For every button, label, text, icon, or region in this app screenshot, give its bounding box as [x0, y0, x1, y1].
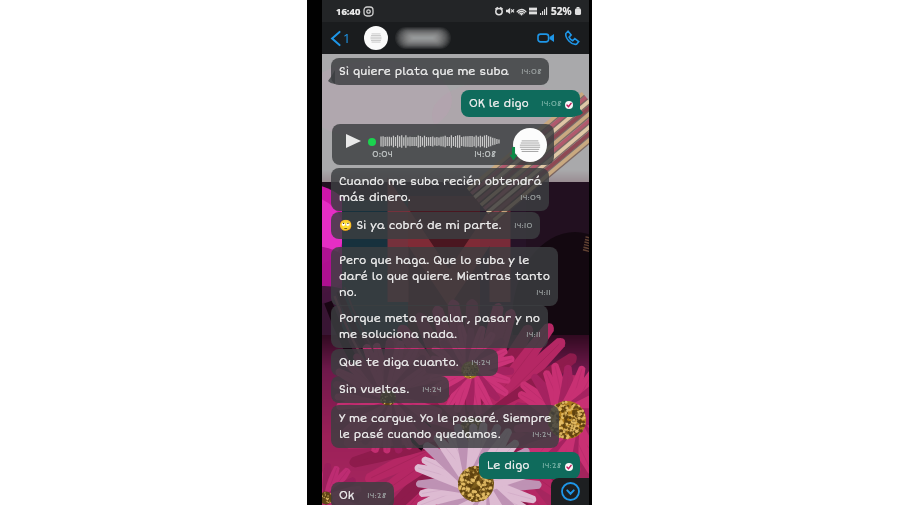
- staticText: 14:11: [526, 330, 541, 340]
- staticText: OK le digo: [469, 97, 529, 110]
- button[interactable]: [393, 25, 453, 51]
- staticText: Si quiere plata que me suba: [339, 65, 509, 78]
- staticText: 14:08: [521, 67, 542, 77]
- button[interactable]: Le digo: [479, 452, 580, 479]
- button[interactable]: Y me cargue. Yo le pasaré. Siempre: [331, 405, 559, 448]
- staticText: Le digo: [487, 459, 530, 472]
- staticText: 14:11: [536, 288, 551, 298]
- staticText: Cuando me suba recién obtendrá: [339, 175, 542, 188]
- staticText: 14:10: [514, 221, 533, 231]
- staticText: 14:08: [541, 99, 562, 109]
- button[interactable]: Ok: [331, 482, 394, 505]
- button[interactable]: OK le digo: [461, 90, 580, 117]
- staticText: daré lo que quiere. Mientras tanto: [339, 270, 551, 283]
- staticText: 1: [343, 29, 351, 47]
- staticText: 0:04: [372, 149, 393, 159]
- staticText: 16:40: [336, 5, 361, 18]
- staticText: 14:08: [474, 149, 496, 159]
- staticText: Y me cargue. Yo le pasaré. Siempre: [339, 412, 552, 425]
- staticText: 14:24: [532, 430, 552, 440]
- button[interactable]: Back: [329, 25, 353, 51]
- staticText: 14:24: [471, 358, 491, 368]
- button[interactable]: Sin vueltas.: [331, 376, 449, 403]
- staticText: más dinero.: [339, 191, 411, 204]
- button[interactable]: 🙄 Si ya cobró de mi parte.: [331, 212, 540, 239]
- staticText: 52%: [551, 4, 572, 18]
- other: Play voice message: [346, 134, 361, 148]
- staticText: me soluciona nada.: [339, 328, 457, 341]
- button[interactable]: Si quiere plata que me suba: [331, 58, 549, 85]
- staticText: 14:28: [542, 461, 562, 471]
- staticText: Que te diga cuanto.: [339, 356, 459, 369]
- button[interactable]: Scroll to bottom: [551, 478, 589, 505]
- staticText: 14:09: [520, 193, 542, 203]
- staticText: Pero que haga. Que lo suba y le: [339, 254, 530, 267]
- button[interactable]: Play voice message: [332, 124, 554, 165]
- other: Back: [331, 31, 340, 46]
- button[interactable]: Pero que haga. Que lo suba y le: [331, 247, 558, 306]
- button[interactable]: Que te diga cuanto.: [331, 349, 498, 376]
- staticText: le pasé cuando quedamos.: [339, 428, 501, 441]
- staticText: 14:24: [422, 385, 442, 395]
- staticText: Sin vueltas.: [339, 383, 410, 396]
- staticText: 🙄 Si ya cobró de mi parte.: [339, 219, 502, 232]
- button[interactable]: Porque meta regalar, pasar y no: [331, 305, 548, 348]
- staticText: 14:28: [367, 491, 387, 501]
- staticText: Ok: [339, 489, 355, 502]
- button[interactable]: Video call: [533, 25, 559, 51]
- button[interactable]: Cuando me suba recién obtendrá: [331, 168, 549, 211]
- button[interactable]: Voice call: [559, 25, 585, 51]
- staticText: no.: [339, 286, 357, 299]
- staticText: Porque meta regalar, pasar y no: [339, 312, 541, 325]
- button[interactable]: Contact photo: [364, 26, 388, 50]
